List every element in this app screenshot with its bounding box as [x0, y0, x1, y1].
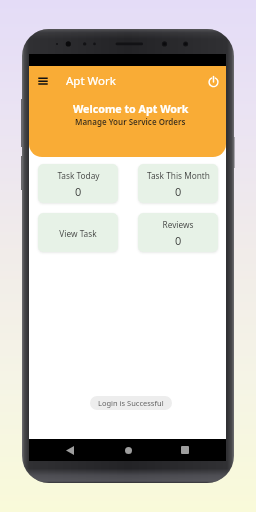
staticText: Task Today: [57, 170, 100, 181]
button[interactable]: Reviews: [138, 213, 218, 252]
button[interactable]: View Task: [38, 213, 118, 252]
button[interactable]: Menu: [34, 72, 52, 90]
button[interactable]: Home: [120, 442, 136, 458]
staticText: 0: [175, 184, 182, 199]
button[interactable]: Task This Month: [138, 164, 218, 203]
staticText: Login is Successful: [98, 398, 164, 408]
button[interactable]: Recents: [177, 442, 193, 458]
button[interactable]: Logout: [203, 71, 223, 91]
staticText: View Task: [59, 228, 97, 239]
staticText: 0: [75, 184, 82, 199]
button[interactable]: Back: [62, 442, 78, 458]
staticText: Manage Your Service Orders: [75, 116, 186, 127]
staticText: Apt Work: [66, 73, 116, 89]
staticText: Task This Month: [147, 170, 210, 181]
staticText: 0: [175, 233, 182, 248]
button[interactable]: Task Today: [38, 164, 118, 203]
staticText: Reviews: [162, 219, 194, 230]
staticText: Welcome to Apt Work: [73, 102, 189, 117]
